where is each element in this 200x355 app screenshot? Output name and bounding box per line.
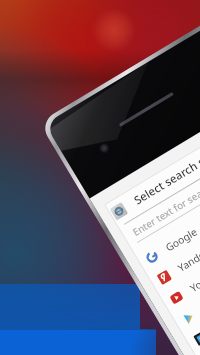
button[interactable]: Select search site app screenshot bbox=[0, 0, 200, 355]
